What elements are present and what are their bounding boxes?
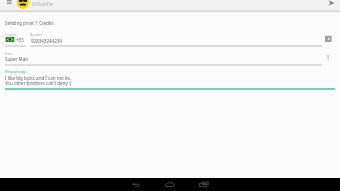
staticText: +55 bbox=[16, 37, 24, 43]
button[interactable]: Contacts bbox=[322, 34, 334, 46]
staticText: 928343244234 bbox=[31, 38, 62, 44]
button[interactable]: Menu bbox=[3, 0, 15, 7]
staticText: From bbox=[5, 52, 13, 56]
staticText: ImTobiTle bbox=[32, 1, 53, 7]
staticText: Super Man bbox=[5, 56, 28, 62]
staticText: I like big butts and I can not lie, You … bbox=[5, 75, 72, 87]
button[interactable]: Home bbox=[160, 178, 178, 191]
button[interactable]: Send bbox=[326, 0, 337, 9]
staticText: Sending price: 1 Credits bbox=[5, 20, 54, 26]
staticText: Number bbox=[30, 33, 42, 37]
button[interactable]: Filter bbox=[322, 53, 334, 65]
button[interactable]: Recents bbox=[194, 178, 212, 191]
button[interactable]: Back bbox=[128, 178, 146, 191]
staticText: Message body bbox=[5, 70, 26, 74]
staticText: Country bbox=[5, 33, 17, 37]
